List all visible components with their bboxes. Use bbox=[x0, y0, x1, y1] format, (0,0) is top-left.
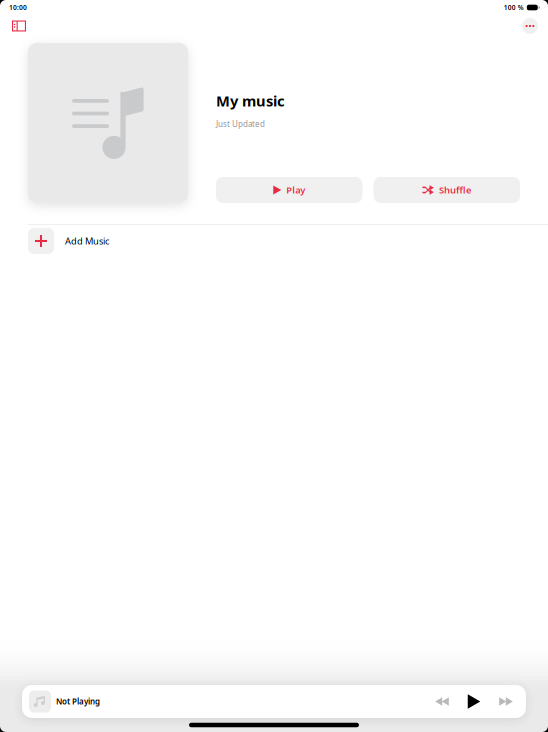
staticText: Play bbox=[286, 184, 305, 196]
staticText: My music bbox=[216, 91, 285, 110]
button[interactable]: Play bbox=[456, 689, 492, 713]
button[interactable]: Play bbox=[216, 177, 362, 203]
button[interactable]: Add Music bbox=[0, 225, 548, 257]
staticText: Shuffle bbox=[439, 184, 471, 196]
button[interactable]: More options bbox=[519, 17, 541, 35]
button[interactable]: Show sidebar bbox=[6, 17, 32, 35]
staticText: Add Music bbox=[65, 235, 109, 247]
button[interactable]: Fast forward bbox=[492, 689, 520, 713]
button[interactable]: Rewind bbox=[428, 689, 456, 713]
staticText: 10:00 bbox=[9, 3, 27, 12]
staticText: Just Updated bbox=[216, 118, 265, 129]
button[interactable]: Not Playing bbox=[29, 690, 428, 712]
staticText: Not Playing bbox=[56, 696, 100, 707]
staticText: 100 % bbox=[504, 3, 524, 12]
button[interactable]: Shuffle bbox=[373, 177, 520, 203]
